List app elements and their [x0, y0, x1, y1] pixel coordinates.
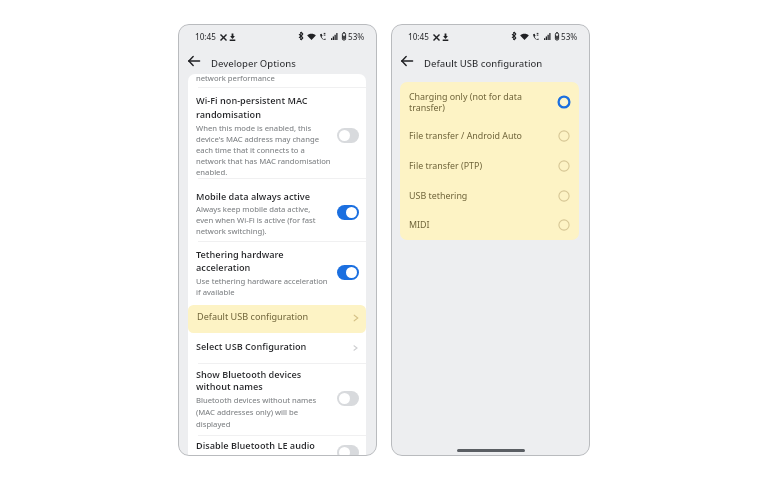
button[interactable]: Navigate up: [185, 52, 203, 70]
other: Not selected: [557, 129, 571, 143]
other: Not selected: [557, 218, 571, 232]
button[interactable]: Toggle off: [337, 445, 359, 456]
staticText: Charging only (not for data transfer): [409, 91, 554, 113]
button[interactable]: Toggle on: [337, 265, 359, 280]
other: Selected: [557, 95, 571, 109]
button[interactable]: Default USB configuration: [188, 305, 366, 333]
other: Not selected: [557, 189, 571, 203]
button[interactable]: Select USB Configuration: [188, 333, 366, 360]
button[interactable]: Toggle off: [337, 391, 359, 406]
staticText: Tethering hardware acceleration: [196, 248, 284, 274]
staticText: Show Bluetooth devices without names: [196, 368, 302, 392]
button[interactable]: Wi-Fi non-persistent MAC randomisation: [188, 88, 366, 177]
button[interactable]: Disable Bluetooth LE audio: [188, 436, 366, 456]
staticText: 10:45: [408, 31, 429, 42]
button[interactable]: Show Bluetooth devices without names: [188, 364, 366, 430]
staticText: MIDI: [409, 219, 554, 230]
staticText: network performance: [196, 74, 275, 83]
staticText: File transfer / Android Auto: [409, 130, 554, 141]
button[interactable]: USB tethering: [400, 179, 579, 209]
staticText: 53%: [348, 31, 365, 42]
staticText: 53%: [561, 31, 578, 42]
staticText: Wi-Fi non-persistent MAC randomisation: [196, 93, 308, 121]
staticText: Always keep mobile data active, even whe…: [196, 203, 346, 236]
staticText: When this mode is enabled, this device's…: [196, 122, 346, 177]
button[interactable]: MIDI: [400, 209, 579, 239]
staticText: Default USB configuration: [424, 57, 543, 70]
button[interactable]: Navigate up: [398, 52, 416, 70]
staticText: 10:45: [195, 31, 216, 42]
button[interactable]: File transfer (PTP): [400, 150, 579, 180]
other: Not selected: [557, 159, 571, 173]
staticText: Default USB configuration: [197, 310, 309, 322]
button[interactable]: File transfer / Android Auto: [400, 120, 579, 150]
button[interactable]: Charging only (not for data transfer): [400, 82, 579, 112]
staticText: Select USB Configuration: [196, 340, 307, 352]
staticText: Developer Options: [211, 57, 296, 70]
staticText: Disable Bluetooth LE audio: [196, 439, 315, 451]
staticText: Use tethering hardware acceleration if a…: [196, 275, 351, 297]
staticText: File transfer (PTP): [409, 160, 554, 171]
staticText: Mobile data always active: [196, 190, 311, 202]
button[interactable]: Tethering hardware acceleration: [188, 242, 366, 303]
button[interactable]: Toggle off: [337, 128, 359, 143]
staticText: USB tethering: [409, 190, 554, 201]
button[interactable]: Toggle on: [337, 205, 359, 220]
button[interactable]: Mobile data always active: [188, 178, 366, 243]
staticText: Bluetooth devices without names (MAC add…: [196, 394, 346, 430]
